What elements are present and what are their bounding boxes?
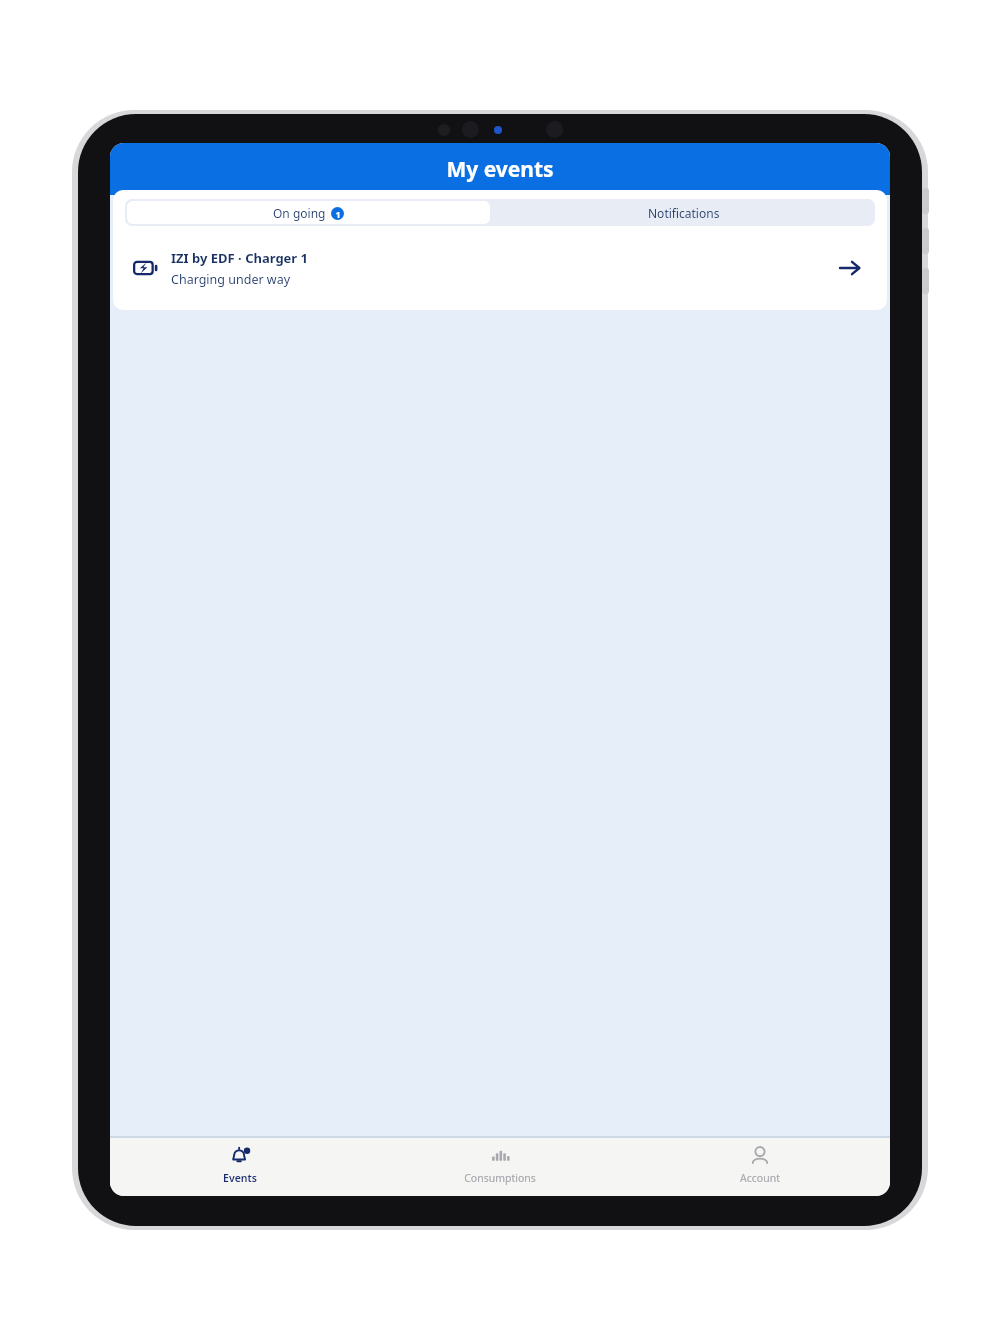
button[interactable]: IZI by EDF · Charger 1 [113, 236, 887, 300]
staticText: Consumptions [464, 1171, 536, 1185]
staticText: On going [273, 205, 326, 221]
staticText: Notifications [648, 205, 720, 221]
staticText: 1 [335, 208, 341, 220]
button[interactable]: Notifications [492, 199, 875, 226]
button[interactable]: Events [110, 1138, 370, 1196]
staticText: Charging under way [171, 271, 291, 288]
button[interactable]: On going [127, 201, 490, 224]
staticText: IZI by EDF · Charger 1 [171, 249, 308, 267]
staticText: Account [740, 1171, 780, 1185]
button[interactable]: Account [630, 1138, 890, 1196]
button[interactable]: Consumptions [370, 1138, 630, 1196]
other: Open details [835, 253, 865, 283]
staticText: My events [446, 155, 554, 184]
staticText: Events [223, 1171, 257, 1185]
